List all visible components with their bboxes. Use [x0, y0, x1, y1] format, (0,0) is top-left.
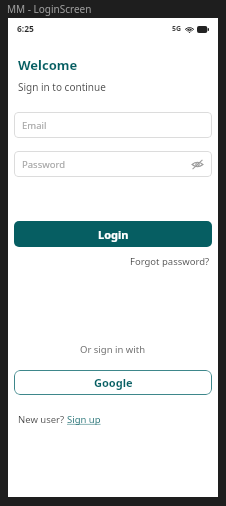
staticText: Forgot password?	[130, 255, 210, 268]
staticText: 5G	[172, 24, 182, 34]
staticText: 6:25	[17, 23, 34, 35]
staticText: Sign in to continue	[18, 80, 106, 94]
button[interactable]: Email	[14, 112, 212, 138]
staticText: Password	[22, 158, 65, 171]
button[interactable]: Password	[14, 151, 212, 177]
staticText: New user?	[18, 413, 67, 426]
staticText: MM - LoginScreen	[7, 2, 92, 16]
staticText: Google	[94, 375, 133, 390]
button[interactable]: Google	[14, 370, 212, 395]
staticText: Sign up	[67, 413, 101, 426]
staticText: Welcome	[18, 56, 78, 74]
staticText: Or sign in with	[80, 343, 146, 356]
button[interactable]: Forgot password?	[130, 255, 210, 268]
button[interactable]: Sign up	[67, 413, 101, 426]
button[interactable]: Login	[14, 221, 212, 247]
staticText: Login	[98, 227, 129, 242]
staticText: Email	[22, 119, 47, 132]
button[interactable]: Show password	[190, 157, 204, 171]
